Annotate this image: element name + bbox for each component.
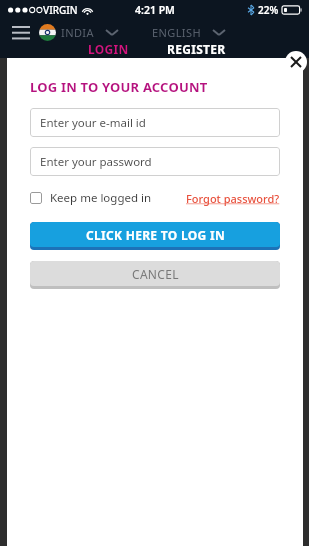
button[interactable]: CANCEL [30, 261, 280, 289]
button[interactable]: ENGLISH [152, 25, 225, 40]
button[interactable]: Menu [10, 22, 32, 42]
button[interactable]: India [39, 24, 56, 41]
staticText: Enter your password [40, 154, 152, 170]
staticText: INDIA [61, 25, 94, 40]
button[interactable]: LOGIN [88, 41, 129, 56]
staticText: REGISTER [167, 41, 226, 56]
staticText: 4:21 PM [135, 3, 175, 17]
button[interactable]: Keep me logged in [30, 190, 152, 206]
button[interactable]: Enter your e-mail id [30, 108, 280, 137]
button[interactable]: Enter your password [30, 147, 280, 176]
staticText: LOG IN TO YOUR ACCOUNT [30, 78, 208, 96]
button[interactable]: INDIA [61, 25, 118, 40]
staticText: 22% [258, 3, 279, 17]
staticText: LOGIN [88, 41, 129, 56]
staticText: CANCEL [132, 266, 179, 282]
staticText: CLICK HERE TO LOG IN [86, 227, 225, 243]
button[interactable]: Close [285, 51, 307, 73]
button[interactable]: REGISTER [167, 41, 226, 56]
staticText: Enter your e-mail id [40, 115, 146, 131]
staticText: Keep me logged in [50, 190, 152, 206]
staticText: Forgot password? [186, 191, 280, 206]
staticText: VIRGIN [43, 3, 78, 17]
button[interactable]: Forgot password? [186, 191, 280, 206]
staticText: ENGLISH [152, 25, 201, 40]
button[interactable]: CLICK HERE TO LOG IN [30, 222, 280, 250]
